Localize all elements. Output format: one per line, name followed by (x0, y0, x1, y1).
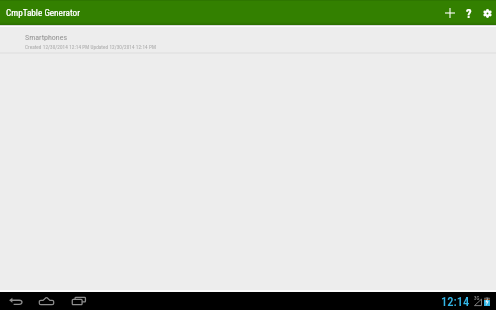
button[interactable]: Settings (478, 1, 496, 25)
button[interactable]: Back (9, 293, 23, 309)
button[interactable]: Smartphones (0, 27, 496, 52)
staticText: Smartphones (25, 33, 68, 42)
staticText: ? (466, 6, 472, 21)
button[interactable]: Recent apps (72, 293, 86, 309)
staticText: 12:14 (441, 294, 470, 309)
staticText: 3G (474, 295, 480, 301)
button[interactable]: Home (39, 293, 54, 309)
button[interactable]: Help (459, 1, 477, 25)
button[interactable]: Add (440, 1, 458, 25)
staticText: Created 12/30/2014 12:14 PM Updated 12/3… (25, 44, 156, 50)
staticText: CmpTable Generator (6, 7, 80, 18)
